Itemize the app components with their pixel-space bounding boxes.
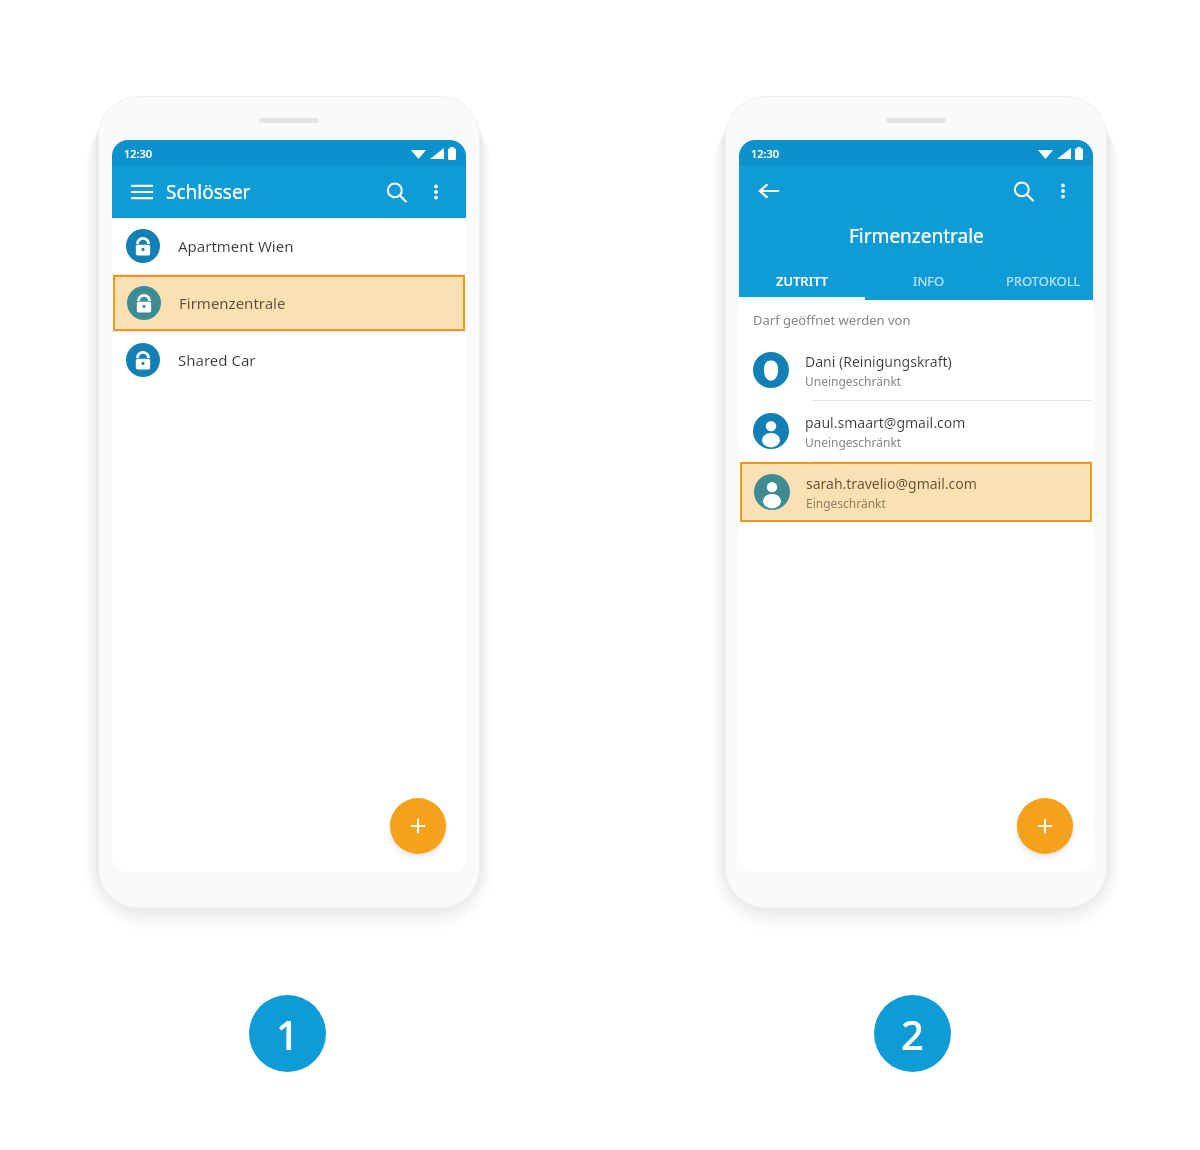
- staticText: sarah.travelio@gmail.com: [806, 474, 977, 493]
- button[interactable]: More options: [416, 172, 456, 212]
- button[interactable]: sarah.travelio@gmail.com: [740, 462, 1092, 522]
- button[interactable]: Menu: [122, 172, 162, 212]
- staticText: Schlösser: [166, 179, 251, 205]
- staticText: 2: [901, 1007, 924, 1061]
- staticText: 12:30: [751, 146, 780, 161]
- button[interactable]: More options: [1043, 171, 1083, 211]
- button[interactable]: PROTOKOLL: [993, 262, 1093, 300]
- staticText: INFO: [913, 272, 945, 290]
- button[interactable]: Back: [749, 171, 789, 211]
- staticText: 1: [276, 1007, 299, 1061]
- button[interactable]: Search: [376, 172, 416, 212]
- staticText: paul.smaart@gmail.com: [805, 413, 966, 432]
- button[interactable]: Firmenzentrale: [113, 275, 465, 331]
- staticText: Uneingeschränkt: [805, 373, 902, 389]
- button[interactable]: Apartment Wien: [112, 218, 466, 274]
- button[interactable]: INFO: [865, 262, 993, 300]
- staticText: Darf geöffnet werden von: [753, 311, 911, 329]
- button[interactable]: Search: [1003, 171, 1043, 211]
- button[interactable]: Shared Car: [112, 332, 466, 388]
- staticText: Firmenzentrale: [179, 293, 286, 313]
- staticText: Uneingeschränkt: [805, 434, 902, 450]
- button[interactable]: paul.smaart@gmail.com: [739, 401, 1093, 461]
- button[interactable]: Dani (Reinigungskraft): [739, 340, 1093, 400]
- button[interactable]: Add: [390, 798, 446, 854]
- staticText: ZUTRITT: [776, 272, 829, 290]
- staticText: Shared Car: [178, 350, 256, 370]
- staticText: Firmenzentrale: [849, 223, 984, 249]
- staticText: Eingeschränkt: [806, 495, 886, 511]
- button[interactable]: Add: [1017, 798, 1073, 854]
- button[interactable]: ZUTRITT: [739, 262, 865, 300]
- staticText: Dani (Reinigungskraft): [805, 352, 952, 371]
- staticText: PROTOKOLL: [1006, 272, 1081, 290]
- staticText: 12:30: [124, 146, 153, 161]
- staticText: Apartment Wien: [178, 236, 294, 256]
